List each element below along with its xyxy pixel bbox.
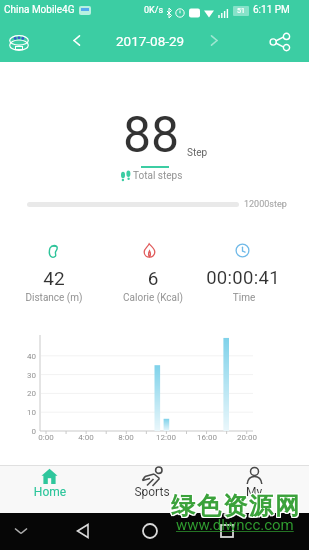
- button[interactable]: [6, 32, 32, 54]
- staticText: 12000step: [244, 199, 287, 210]
- staticText: 6:11 PM: [253, 4, 290, 16]
- staticText: 40: [16, 352, 36, 361]
- staticText: Step: [187, 147, 208, 159]
- staticText: 绿色资源网: [170, 492, 300, 522]
- staticText: 绿色资源网: [171, 491, 301, 521]
- staticText: 绿色资源网: [171, 490, 301, 520]
- staticText: 绿色资源网: [169, 490, 299, 520]
- staticText: 0:00: [31, 433, 61, 442]
- staticText: 20: [16, 389, 36, 398]
- staticText: 30: [16, 371, 36, 380]
- staticText: 6: [98, 267, 208, 289]
- staticText: 0: [16, 427, 36, 436]
- button[interactable]: Sports: [112, 466, 192, 513]
- button[interactable]: My: [214, 466, 294, 513]
- button[interactable]: [68, 31, 86, 50]
- button[interactable]: [206, 31, 224, 50]
- staticText: Calorie (Kcal): [98, 292, 208, 304]
- staticText: Home: [10, 485, 90, 499]
- staticText: 绿色资源网: [170, 490, 300, 520]
- staticText: 4:00: [71, 433, 101, 442]
- staticText: 42: [0, 267, 109, 289]
- staticText: My: [214, 485, 294, 499]
- staticText: Time: [189, 292, 299, 304]
- staticText: 绿色资源网: [171, 492, 301, 522]
- staticText: 00:00:41: [188, 267, 298, 289]
- staticText: 0K/s: [144, 5, 164, 16]
- staticText: 51: [237, 7, 245, 15]
- staticText: Sports: [112, 485, 192, 499]
- button[interactable]: Home: [10, 466, 90, 513]
- staticText: www.dlwncc.com: [176, 516, 294, 534]
- button[interactable]: [266, 31, 294, 53]
- staticText: 2017-08-29: [116, 33, 185, 49]
- staticText: Distance (m): [0, 292, 109, 304]
- staticText: 绿色资源网: [169, 491, 299, 521]
- staticText: 绿色资源网: [170, 491, 300, 521]
- staticText: 12:00: [151, 433, 181, 442]
- staticText: 16:00: [192, 433, 222, 442]
- staticText: 88: [123, 106, 180, 165]
- staticText: 20:00: [232, 433, 262, 442]
- staticText: China Mobile4G: [4, 4, 75, 16]
- staticText: 绿色资源网: [169, 492, 299, 522]
- staticText: 8:00: [111, 433, 141, 442]
- staticText: Total steps: [133, 170, 183, 182]
- staticText: 10: [16, 408, 36, 417]
- button[interactable]: 2017-08-29: [100, 31, 200, 51]
